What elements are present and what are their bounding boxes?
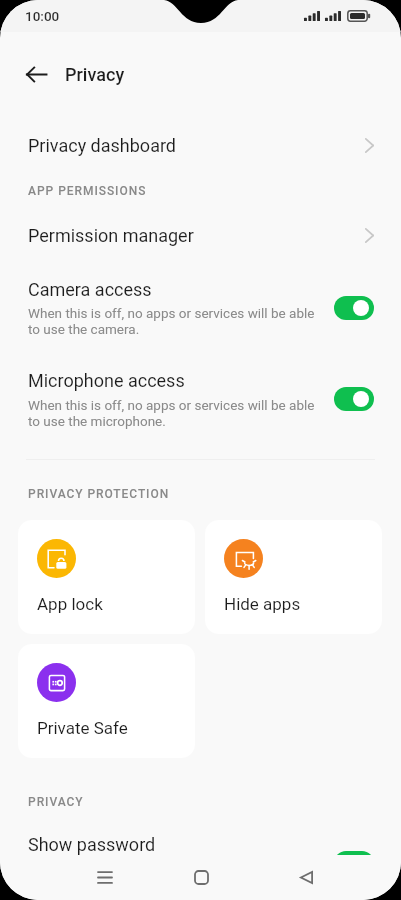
staticText: App lock — [37, 594, 103, 614]
button[interactable]: Show password — [0, 818, 401, 870]
staticText: Permission manager — [28, 225, 194, 246]
staticText: 10:00 — [25, 8, 60, 24]
button[interactable]: Permission manager — [0, 209, 401, 261]
button[interactable]: Home — [176, 855, 226, 900]
button[interactable]: Private Safe — [18, 644, 195, 758]
button[interactable]: Privacy dashboard — [0, 119, 401, 171]
button[interactable]: Show password — [334, 851, 374, 875]
button[interactable]: Camera access — [334, 296, 374, 320]
staticText: APP PERMISSIONS — [28, 184, 147, 198]
staticText: When this is off, no apps or services wi… — [28, 397, 315, 430]
button[interactable]: Camera access — [0, 269, 401, 347]
staticText: When this is off, no apps or services wi… — [28, 305, 315, 338]
staticText: Camera access — [28, 279, 152, 300]
staticText: Privacy — [65, 64, 125, 85]
button[interactable]: Microphone access — [0, 360, 401, 438]
button[interactable]: Hide apps — [205, 520, 382, 634]
staticText: Privacy dashboard — [28, 135, 177, 156]
staticText: PRIVACY — [28, 795, 84, 809]
staticText: Private Safe — [37, 718, 128, 738]
button[interactable]: Microphone access — [334, 387, 374, 411]
button[interactable]: Back — [281, 855, 331, 900]
staticText: Show password — [28, 834, 156, 855]
staticText: Microphone access — [28, 370, 185, 391]
button[interactable]: App lock — [18, 520, 195, 634]
staticText: Hide apps — [224, 594, 301, 614]
button[interactable]: Back — [20, 58, 52, 90]
staticText: PRIVACY PROTECTION — [28, 487, 170, 501]
button[interactable]: Recents — [80, 855, 130, 900]
